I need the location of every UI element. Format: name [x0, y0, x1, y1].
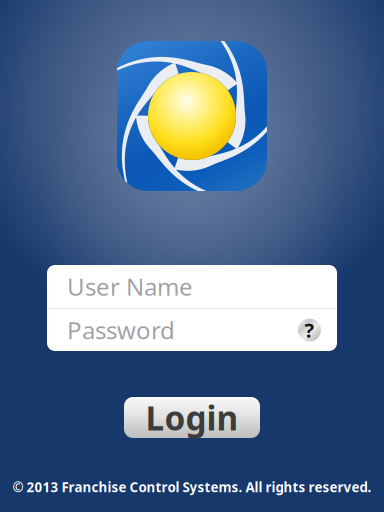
- staticText: Login: [145, 395, 238, 440]
- staticText: © 2013 Franchise Control Systems. All ri…: [12, 478, 371, 496]
- button[interactable]: User Name: [47, 265, 337, 308]
- staticText: ?: [304, 317, 314, 343]
- staticText: Password: [67, 314, 175, 346]
- button[interactable]: Login: [124, 397, 260, 438]
- button[interactable]: Password: [47, 309, 337, 351]
- staticText: User Name: [67, 271, 193, 302]
- button[interactable]: Help: [298, 318, 321, 341]
